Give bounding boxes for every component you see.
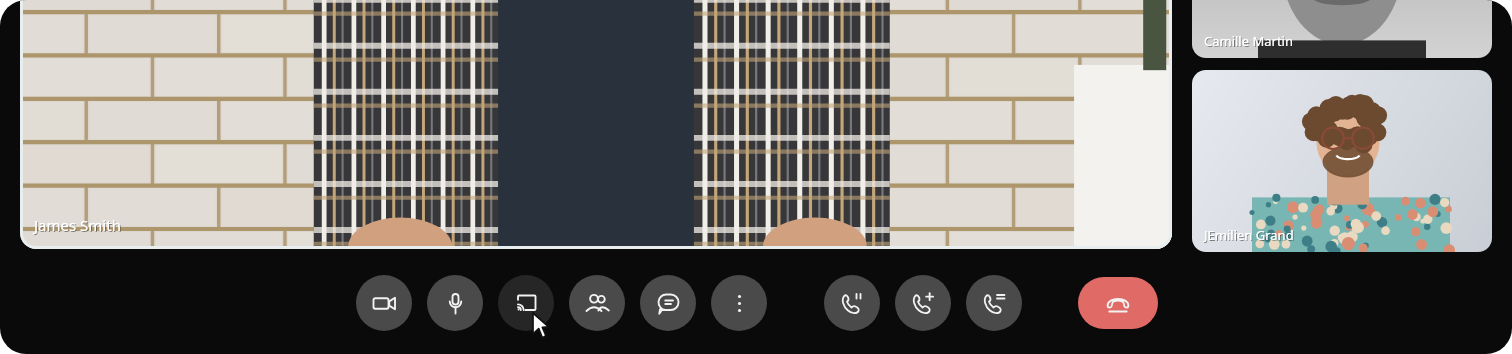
staticText: JEmilien Grand bbox=[1204, 226, 1294, 244]
button[interactable]: Transfer call bbox=[966, 275, 1022, 331]
button[interactable]: Participants bbox=[569, 275, 625, 331]
button[interactable]: James Smith bbox=[20, 0, 1172, 249]
button[interactable]: Camera bbox=[356, 275, 412, 331]
button[interactable]: Add call bbox=[895, 275, 951, 331]
staticText: JEmilien Grand bbox=[1205, 227, 1295, 245]
button[interactable]: Chat bbox=[640, 275, 696, 331]
button[interactable]: More options bbox=[711, 275, 767, 331]
button[interactable]: JEmilien Grand bbox=[1192, 70, 1492, 252]
staticText: Camille Martin bbox=[1205, 33, 1294, 51]
button[interactable]: Microphone bbox=[427, 275, 483, 331]
button[interactable]: Camille Martin bbox=[1192, 0, 1492, 58]
button[interactable]: Share screen bbox=[498, 275, 554, 331]
button[interactable]: End call bbox=[1078, 277, 1158, 329]
button[interactable]: Hold call bbox=[824, 275, 880, 331]
staticText: Camille Martin bbox=[1204, 32, 1293, 50]
staticText: James Smith bbox=[35, 216, 122, 236]
staticText: James Smith bbox=[34, 215, 121, 235]
